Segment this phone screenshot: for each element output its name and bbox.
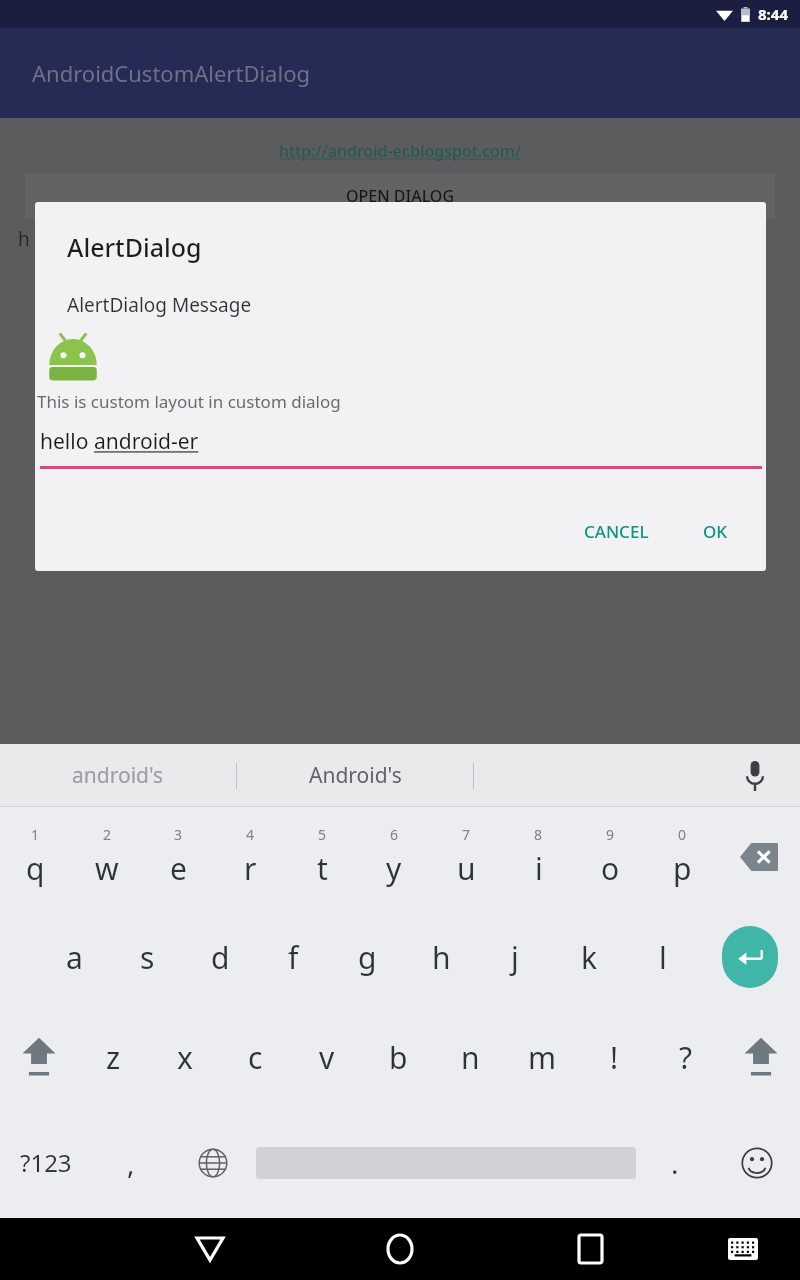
button[interactable]: a bbox=[38, 907, 111, 1007]
staticText: 6 bbox=[390, 825, 399, 844]
button[interactable]: 9 bbox=[574, 807, 646, 907]
staticText: Android's bbox=[309, 761, 402, 790]
staticText: . bbox=[671, 1144, 679, 1182]
staticText: ! bbox=[610, 1037, 619, 1078]
button[interactable]: 5 bbox=[286, 807, 358, 907]
staticText: o bbox=[601, 848, 620, 889]
button[interactable]: Voice input bbox=[710, 744, 800, 807]
button[interactable]: Shift bbox=[0, 1007, 78, 1107]
button[interactable]: ? bbox=[650, 1007, 722, 1107]
staticText: n bbox=[461, 1037, 480, 1078]
staticText: OK bbox=[703, 520, 728, 543]
staticText: v bbox=[319, 1037, 335, 1078]
button[interactable]: , bbox=[92, 1107, 170, 1218]
staticText: android-er bbox=[94, 427, 199, 456]
button[interactable]: g bbox=[330, 907, 404, 1007]
button[interactable]: Emoji bbox=[714, 1107, 800, 1218]
button[interactable]: OPEN DIALOG bbox=[25, 173, 775, 219]
button[interactable]: b bbox=[362, 1007, 434, 1107]
staticText: This is custom layout in custom dialog bbox=[37, 390, 341, 413]
button[interactable]: 2 bbox=[71, 807, 142, 907]
button[interactable]: OK bbox=[691, 512, 740, 551]
staticText: h bbox=[432, 937, 451, 978]
button[interactable]: Enter bbox=[700, 907, 800, 1007]
button[interactable]: h bbox=[404, 907, 478, 1007]
staticText: k bbox=[581, 937, 598, 978]
staticText: ?123 bbox=[20, 1146, 72, 1179]
staticText: 1 bbox=[31, 825, 40, 844]
staticText: q bbox=[26, 848, 45, 889]
button[interactable]: 3 bbox=[142, 807, 214, 907]
button[interactable]: Android's bbox=[237, 744, 473, 807]
button[interactable]: c bbox=[220, 1007, 291, 1107]
staticText: m bbox=[528, 1037, 557, 1078]
staticText: i bbox=[535, 848, 543, 889]
button[interactable]: Change language bbox=[170, 1107, 256, 1218]
staticText: w bbox=[95, 848, 119, 889]
staticText: 8 bbox=[534, 825, 543, 844]
staticText: l bbox=[659, 937, 667, 978]
button[interactable]: z bbox=[78, 1007, 149, 1107]
staticText: AlertDialog bbox=[67, 230, 202, 264]
staticText: h bbox=[18, 226, 30, 252]
staticText: e bbox=[170, 848, 187, 889]
staticText: CANCEL bbox=[584, 520, 649, 543]
staticText: hello bbox=[40, 427, 94, 456]
button[interactable]: 1 bbox=[0, 807, 71, 907]
button[interactable]: ?123 bbox=[0, 1107, 92, 1218]
button[interactable]: 7 bbox=[430, 807, 502, 907]
staticText: 8:44 bbox=[758, 4, 788, 24]
button[interactable]: CANCEL bbox=[572, 512, 661, 551]
staticText: ? bbox=[679, 1037, 693, 1078]
button[interactable]: n bbox=[434, 1007, 506, 1107]
staticText: x bbox=[177, 1037, 193, 1078]
staticText: 3 bbox=[174, 825, 183, 844]
button[interactable]: l bbox=[626, 907, 700, 1007]
staticText: j bbox=[511, 937, 519, 978]
button[interactable]: s bbox=[111, 907, 184, 1007]
button[interactable]: Keyboard bbox=[685, 1218, 800, 1280]
staticText: 0 bbox=[678, 825, 687, 844]
staticText: AndroidCustomAlertDialog bbox=[32, 58, 310, 88]
button[interactable]: 4 bbox=[214, 807, 286, 907]
button[interactable]: d bbox=[184, 907, 257, 1007]
button[interactable]: f bbox=[257, 907, 330, 1007]
staticText: z bbox=[106, 1037, 121, 1078]
staticText: android's bbox=[72, 761, 164, 790]
button[interactable]: ! bbox=[578, 1007, 650, 1107]
staticText: b bbox=[389, 1037, 408, 1078]
button[interactable]: x bbox=[149, 1007, 220, 1107]
button[interactable]: android's bbox=[0, 744, 236, 807]
staticText: t bbox=[317, 848, 328, 889]
button[interactable]: m bbox=[506, 1007, 578, 1107]
staticText: OPEN DIALOG bbox=[346, 185, 455, 207]
button[interactable]: v bbox=[291, 1007, 362, 1107]
staticText: f bbox=[288, 937, 299, 978]
staticText: g bbox=[358, 937, 377, 978]
button[interactable]: Space bbox=[256, 1107, 636, 1218]
button[interactable]: 8 bbox=[502, 807, 574, 907]
staticText: r bbox=[244, 848, 257, 889]
staticText: s bbox=[140, 937, 155, 978]
button[interactable]: http://android-er.blogspot.com/ bbox=[279, 140, 522, 162]
staticText: 7 bbox=[462, 825, 471, 844]
button[interactable]: j bbox=[478, 907, 552, 1007]
button[interactable]: Recent apps bbox=[495, 1218, 685, 1280]
button[interactable]: . bbox=[636, 1107, 714, 1218]
staticText: p bbox=[673, 848, 692, 889]
staticText: c bbox=[248, 1037, 263, 1078]
staticText: y bbox=[386, 848, 402, 889]
staticText: , bbox=[127, 1144, 135, 1182]
button[interactable]: Shift bbox=[722, 1007, 800, 1107]
staticText: a bbox=[66, 937, 83, 978]
button[interactable]: Home bbox=[305, 1218, 495, 1280]
staticText: AlertDialog Message bbox=[67, 292, 252, 318]
button[interactable]: 6 bbox=[358, 807, 430, 907]
staticText: 5 bbox=[318, 825, 327, 844]
button[interactable]: 0 bbox=[646, 807, 718, 907]
staticText: 2 bbox=[103, 825, 112, 844]
button[interactable]: Backspace bbox=[718, 807, 800, 907]
button[interactable]: Back bbox=[115, 1218, 305, 1280]
button[interactable]: k bbox=[552, 907, 626, 1007]
